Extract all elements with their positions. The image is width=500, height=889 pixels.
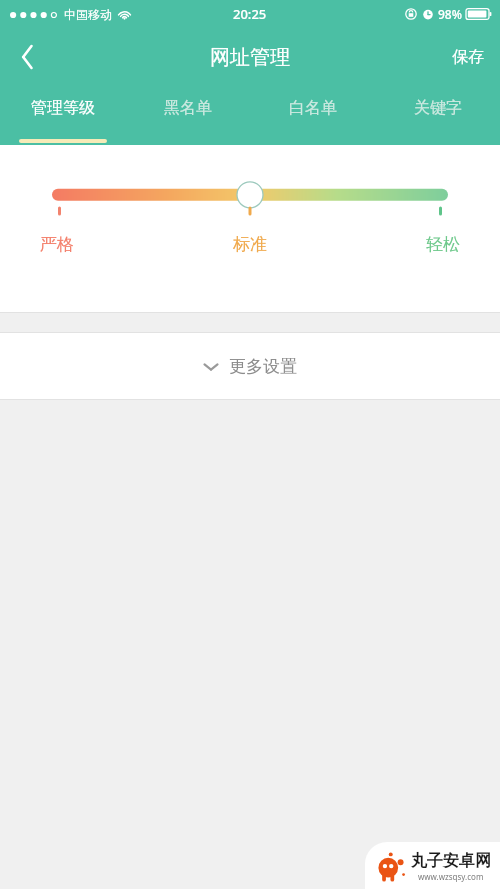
staticText: 白名单 <box>289 98 337 118</box>
staticText: 轻松 <box>426 234 460 255</box>
button[interactable]: 黑名单 <box>125 86 250 145</box>
button[interactable]: 管理等级 <box>0 86 125 145</box>
staticText: www.wzsqsy.com <box>418 871 484 882</box>
button[interactable]: 关键字 <box>375 86 500 145</box>
button[interactable]: 更多设置 <box>0 333 500 399</box>
staticText: 丸子安卓网 <box>411 851 491 871</box>
button[interactable]: 严格 <box>36 230 78 259</box>
staticText: 中国移动 <box>64 7 112 22</box>
staticText: 黑名单 <box>164 98 212 118</box>
staticText: 保存 <box>452 47 484 67</box>
staticText: 严格 <box>40 234 74 255</box>
staticText: 关键字 <box>414 98 462 118</box>
button[interactable]: Back <box>0 28 56 86</box>
staticText: 20:25 <box>233 5 267 23</box>
staticText: 网址管理 <box>210 45 290 70</box>
button[interactable]: 轻松 <box>422 230 464 259</box>
button[interactable]: 标准 <box>229 230 271 259</box>
staticText: 98% <box>438 6 462 22</box>
button[interactable]: 白名单 <box>250 86 375 145</box>
staticText: 更多设置 <box>229 356 297 377</box>
staticText: 管理等级 <box>31 98 95 118</box>
button[interactable]: 保存 <box>436 28 500 86</box>
staticText: 标准 <box>233 234 267 255</box>
